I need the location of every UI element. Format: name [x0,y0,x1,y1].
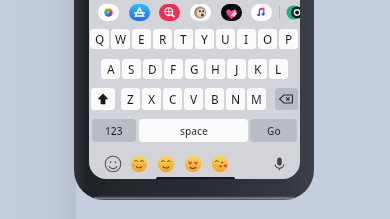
button[interactable]: U [216,29,235,49]
button[interactable]: V [184,88,203,110]
staticText: F [170,61,177,77]
button[interactable]: J [227,59,246,79]
button[interactable]: S [122,59,141,79]
button[interactable]: D [143,59,162,79]
staticText: U [221,31,230,47]
button[interactable]: Emoji keyboard [104,155,122,173]
button[interactable]: M [247,88,266,110]
button[interactable]: Go [250,119,297,142]
button[interactable]: Music hearts [221,4,242,21]
button[interactable]: W [111,29,130,49]
button[interactable]: R [153,29,172,49]
staticText: P [285,31,293,47]
staticText: J [235,61,239,77]
staticText: S [128,61,135,77]
staticText: A [107,61,115,77]
staticText: V [190,91,198,107]
button[interactable]: App Store [129,4,150,21]
staticText: E [138,31,145,47]
button[interactable]: X [142,88,161,110]
button[interactable]: Wallet [284,4,300,21]
button[interactable]: N [226,88,245,110]
staticText: R [159,31,167,47]
button[interactable]: Image search [159,4,180,21]
button[interactable]: Backspace [275,88,298,110]
staticText: Q [95,31,105,47]
staticText: space [180,124,208,138]
staticText: I [244,31,249,47]
button[interactable]: T [174,29,193,49]
staticText: K [254,61,262,77]
button[interactable]: Y [195,29,214,49]
button[interactable]: I [237,29,256,49]
button[interactable]: 123 [92,119,136,142]
staticText: Z [127,91,134,107]
button[interactable]: Smiling face [157,155,175,173]
staticText: O [263,31,273,47]
button[interactable]: L [269,59,288,79]
staticText: D [148,61,157,77]
button[interactable]: K [248,59,267,79]
staticText: B [211,91,219,107]
button[interactable]: Heart eyes [184,155,202,173]
staticText: Y [201,31,208,47]
button[interactable]: O [258,29,277,49]
button[interactable]: B [205,88,224,110]
staticText: Go [267,124,281,138]
button[interactable]: F [164,59,183,79]
button[interactable]: Q [90,29,109,49]
staticText: X [148,91,156,107]
staticText: M [251,91,262,107]
button[interactable]: A [101,59,120,79]
staticText: C [169,91,177,107]
button[interactable]: Photos [98,4,119,21]
button[interactable]: G [185,59,204,79]
button[interactable]: space [139,119,248,142]
staticText: H [211,61,220,77]
button[interactable]: Apple Music [251,4,272,21]
button[interactable]: H [206,59,225,79]
button[interactable]: Z [121,88,140,110]
button[interactable]: Relieved face [130,155,148,173]
button[interactable]: C [163,88,182,110]
button[interactable]: Dictation [271,155,288,172]
button[interactable]: E [132,29,151,49]
staticText: L [275,61,282,77]
button[interactable]: P [279,29,298,49]
button[interactable]: Kissing face [211,155,229,173]
staticText: W [115,31,127,47]
staticText: T [180,31,187,47]
staticText: N [231,91,241,107]
staticText: 123 [105,124,123,138]
button[interactable]: Shift [91,88,115,110]
staticText: G [190,61,199,77]
button[interactable]: Memoji [190,4,211,21]
